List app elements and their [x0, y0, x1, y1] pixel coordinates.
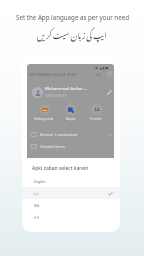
button[interactable]: Naqsh	[57, 104, 83, 124]
button[interactable]: Deleted items	[27, 140, 114, 152]
staticText: MUHAMMAD ARSLAN, 3F(M)	[30, 72, 77, 77]
staticText: English	[34, 179, 46, 184]
staticText: Naqsh	[66, 117, 76, 121]
staticText: Kanstar k makoomat	[40, 132, 78, 137]
staticText: Apki zaban select karein	[32, 165, 89, 172]
button[interactable]: Visiting cards	[31, 104, 57, 124]
button[interactable]: Expand account list	[96, 72, 101, 77]
staticText: Visiting cards	[34, 117, 54, 121]
button[interactable]: Transfer	[83, 104, 109, 124]
staticText: 03312345678	[45, 93, 67, 98]
button[interactable]: Kanstar k makoomat	[27, 128, 114, 140]
button[interactable]: پښتو	[22, 211, 120, 223]
button[interactable]: English	[22, 175, 120, 187]
staticText: اردو	[34, 189, 39, 198]
staticText: Set the App language as per your need	[16, 13, 129, 21]
button[interactable]: हिंदी	[22, 199, 120, 211]
staticText: Transfer	[90, 117, 102, 121]
staticText: Deleted items	[40, 144, 65, 149]
button[interactable]: اردو	[22, 187, 120, 199]
staticText: Muhammad Arslan ...	[45, 86, 88, 92]
staticText: ایپ کی زبان سیٹ کریں	[37, 24, 107, 44]
staticText: हिंदी	[34, 203, 40, 208]
button[interactable]: Edit profile	[106, 89, 113, 96]
staticText: پښتو	[34, 213, 39, 222]
